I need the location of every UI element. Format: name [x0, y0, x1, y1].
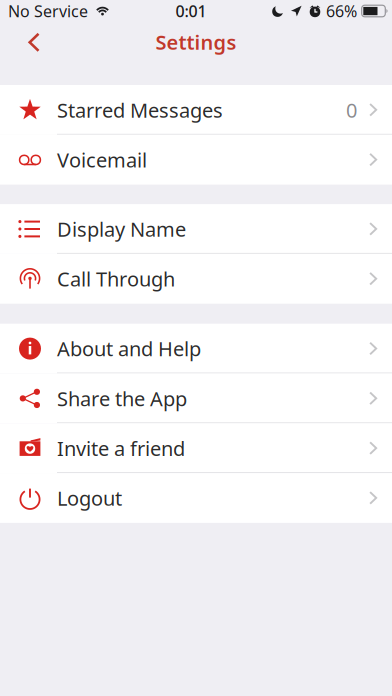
staticText: Share the App: [57, 385, 187, 412]
staticText: Logout: [57, 485, 122, 511]
staticText: Display Name: [57, 216, 186, 242]
button[interactable]: About and Help: [0, 324, 392, 373]
staticText: 0: [346, 97, 357, 123]
staticText: Invite a friend: [57, 435, 185, 461]
staticText: Call Through: [57, 265, 175, 292]
staticText: 66%: [326, 0, 357, 22]
button[interactable]: Share the App: [0, 373, 392, 423]
staticText: No Service: [8, 0, 88, 22]
button[interactable]: Back: [0, 21, 54, 62]
staticText: 0:01: [175, 0, 206, 22]
button[interactable]: Call Through: [0, 254, 392, 304]
button[interactable]: Logout: [0, 473, 392, 523]
staticText: About and Help: [57, 335, 201, 362]
button[interactable]: Invite a friend: [0, 423, 392, 473]
staticText: Settings: [155, 29, 236, 55]
button[interactable]: Starred Messages: [0, 85, 392, 135]
button[interactable]: Voicemail: [0, 135, 392, 185]
staticText: Starred Messages: [57, 97, 223, 123]
staticText: Voicemail: [57, 146, 147, 173]
button[interactable]: Display Name: [0, 204, 392, 254]
